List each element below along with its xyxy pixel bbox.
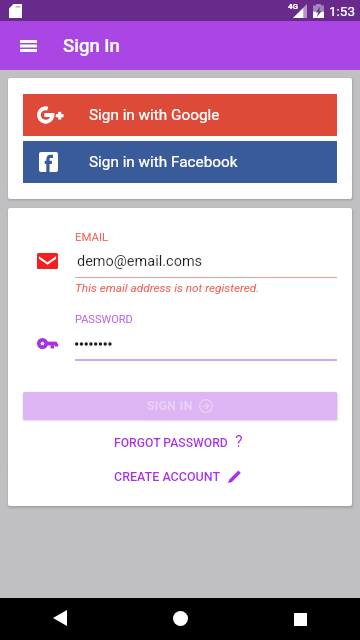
staticText: 4G [288,2,299,11]
staticText: Sign in with Facebook [89,153,238,171]
staticText: ? [235,432,243,451]
button[interactable]: Home [120,598,240,640]
staticText: EMAIL [75,230,109,243]
staticText: SIGN IN [147,399,193,413]
button[interactable]: CREATE ACCOUNT [104,463,252,489]
button[interactable]: Open navigation menu [0,21,48,70]
staticText: FORGOT PASSWORD [114,436,228,450]
button[interactable]: Back [0,598,120,640]
staticText: This email address is not registered. [75,281,260,295]
staticText: Sign in with Google [89,106,220,124]
staticText: 1:53 [329,3,356,19]
staticText: CREATE ACCOUNT [114,469,221,484]
button[interactable]: SIGN IN [23,392,337,420]
staticText: PASSWORD [75,313,133,326]
staticText: demo@email.coms [77,253,203,270]
button[interactable]: Sign in with Google [23,94,337,136]
button[interactable]: Recent apps [240,598,360,640]
staticText: Sign In [63,35,120,57]
button[interactable]: Sign in with Facebook [23,141,337,183]
button[interactable]: FORGOT PASSWORD [104,429,252,455]
